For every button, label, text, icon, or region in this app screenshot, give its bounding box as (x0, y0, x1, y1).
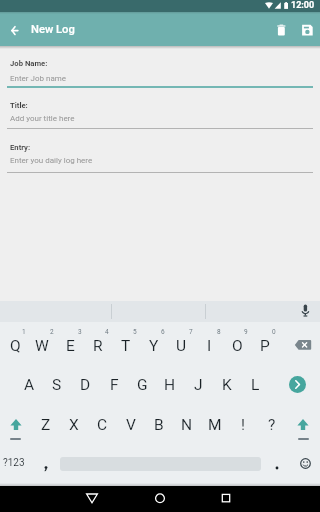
staticText: Title: (10, 101, 28, 110)
staticText: Z (41, 416, 51, 434)
staticText: 0 (272, 328, 276, 336)
staticText: Entry: (10, 143, 31, 152)
button[interactable]: G (112, 371, 172, 399)
staticText: ! (241, 416, 245, 434)
staticText: V (126, 416, 136, 434)
button[interactable] (149, 487, 171, 512)
staticText: 5 (133, 328, 137, 336)
staticText: 12:00 (291, 0, 315, 11)
staticText: U (176, 337, 187, 355)
button[interactable] (297, 303, 314, 320)
button[interactable] (293, 417, 313, 435)
staticText: 4 (105, 328, 109, 336)
button[interactable]: L (225, 371, 285, 399)
button[interactable] (297, 455, 314, 472)
button[interactable]: V (101, 411, 161, 439)
button[interactable]: Y (124, 332, 184, 360)
button[interactable]: E (40, 332, 100, 360)
button[interactable]: S (27, 371, 87, 399)
button[interactable]: Job Name: (0, 48, 320, 301)
staticText: N (181, 416, 193, 434)
staticText: P (260, 337, 270, 355)
staticText: E (66, 337, 75, 355)
staticText: Enter you daily log here (10, 156, 93, 165)
button[interactable]: I (179, 332, 239, 360)
staticText: W (35, 337, 49, 355)
staticText: 8 (217, 328, 221, 336)
button[interactable]: K (197, 371, 257, 399)
button[interactable]: R (68, 332, 128, 360)
staticText: K (222, 376, 232, 394)
staticText: ?123 (3, 457, 25, 469)
button[interactable]: C (72, 411, 132, 439)
button[interactable]: ! (213, 411, 273, 439)
button[interactable] (6, 417, 26, 435)
staticText: 6 (161, 328, 165, 336)
staticText: 2 (50, 328, 54, 336)
staticText: Q (10, 337, 21, 355)
staticText: D (80, 376, 91, 394)
staticText: G (137, 376, 148, 394)
staticText: B (154, 416, 164, 434)
staticText: X (69, 416, 79, 434)
button[interactable]: Q (0, 332, 45, 360)
button[interactable]: B (129, 411, 189, 439)
staticText: T (121, 337, 131, 355)
button[interactable]: D (55, 371, 115, 399)
staticText: Y (149, 337, 159, 355)
button[interactable]: P (235, 332, 295, 360)
button[interactable]: X (44, 411, 104, 439)
button[interactable]: F (84, 371, 144, 399)
staticText: 1 (22, 328, 26, 336)
button[interactable]: A (0, 371, 59, 399)
staticText: New Log (31, 23, 75, 36)
button[interactable] (289, 376, 306, 393)
button[interactable]: J (168, 371, 228, 399)
button[interactable]: O (207, 332, 267, 360)
button[interactable] (215, 487, 237, 512)
staticText: O (232, 337, 243, 355)
button[interactable]: Z (16, 411, 76, 439)
staticText: F (110, 376, 119, 394)
button[interactable]: M (185, 411, 245, 439)
staticText: H (164, 376, 176, 394)
staticText: 9 (244, 328, 248, 336)
staticText: 3 (78, 328, 82, 336)
staticText: ? (268, 416, 276, 434)
button[interactable]: ? (242, 411, 302, 439)
staticText: Enter Job name (10, 74, 66, 83)
staticText: J (194, 376, 203, 394)
button[interactable]: W (12, 332, 72, 360)
staticText: 7 (189, 328, 193, 336)
staticText: I (207, 337, 212, 355)
button[interactable] (81, 487, 103, 512)
staticText: C (97, 416, 108, 434)
button[interactable]: U (151, 332, 211, 360)
staticText: Job Name: (10, 59, 48, 68)
button[interactable]: N (157, 411, 217, 439)
button[interactable]: H (140, 371, 200, 399)
button[interactable] (297, 19, 318, 40)
button[interactable] (294, 339, 314, 355)
button[interactable]: ?123 (0, 449, 44, 477)
button[interactable]: T (96, 332, 156, 360)
button[interactable] (4, 19, 26, 41)
staticText: R (93, 337, 103, 355)
staticText: S (52, 376, 62, 394)
staticText: M (208, 416, 222, 434)
staticText: Add your title here (10, 114, 75, 123)
staticText: L (251, 376, 260, 394)
button[interactable] (271, 19, 292, 40)
staticText: A (24, 376, 35, 394)
